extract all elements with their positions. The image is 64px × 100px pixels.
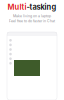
staticText: -tasking	[26, 2, 56, 11]
staticText: Multi	[7, 2, 26, 11]
staticText: Feel free to do faster in Chat	[9, 19, 55, 23]
staticText: Make living on a laptop	[13, 14, 51, 18]
